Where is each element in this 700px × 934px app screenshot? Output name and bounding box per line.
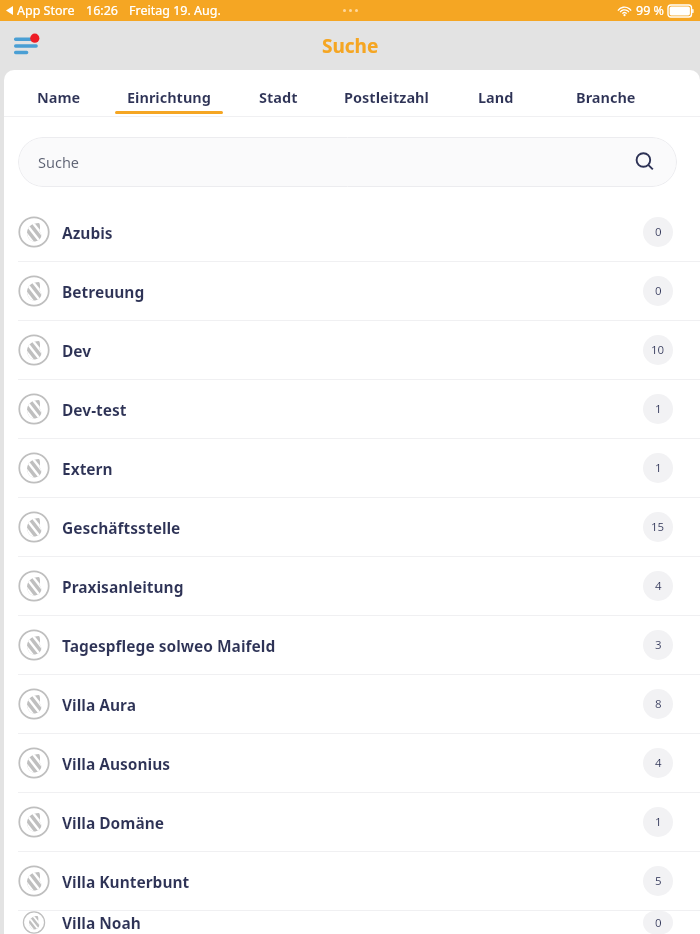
button[interactable]: Villa Aura	[4, 675, 700, 733]
staticText: Suche	[38, 152, 80, 172]
button[interactable]: Azubis	[4, 203, 700, 261]
staticText: 0	[655, 283, 662, 299]
staticText: Dev-test	[62, 399, 643, 420]
staticText: 1	[655, 401, 662, 417]
staticText: Name	[37, 87, 81, 107]
button[interactable]: Villa Kunterbunt	[4, 852, 700, 910]
staticText: Suche	[322, 33, 379, 59]
staticText: Villa Noah	[62, 912, 643, 933]
button[interactable]: Geschäftsstelle	[4, 498, 700, 556]
staticText: 4	[655, 578, 662, 594]
staticText: Land	[478, 87, 514, 107]
button[interactable]: Stadt	[244, 70, 313, 116]
button[interactable]: Villa Domäne	[4, 793, 700, 851]
staticText: Tagespflege solweo Maifeld	[62, 635, 643, 656]
button[interactable]: Name	[29, 70, 89, 116]
staticText: 4	[655, 755, 662, 771]
staticText: Postleitzahl	[344, 87, 429, 107]
button[interactable]: Branche	[563, 70, 649, 116]
button[interactable]: Tagespflege solweo Maifeld	[4, 616, 700, 674]
button[interactable]: Einrichtung	[108, 70, 229, 116]
button[interactable]: Suche	[18, 137, 677, 187]
staticText: Villa Kunterbunt	[62, 871, 643, 892]
staticText: 0	[655, 224, 662, 240]
staticText: App Store	[17, 2, 75, 19]
staticText: 3	[655, 637, 662, 653]
button[interactable]: Postleitzahl	[322, 70, 451, 116]
staticText: Villa Aura	[62, 694, 643, 715]
staticText: 1	[655, 814, 662, 830]
staticText: 99 %	[636, 2, 664, 19]
button[interactable]: Betreuung	[4, 262, 700, 320]
staticText: Villa Domäne	[62, 812, 643, 833]
staticText: 10	[651, 342, 665, 358]
staticText: Einrichtung	[127, 87, 211, 107]
staticText: Stadt	[259, 87, 298, 107]
staticText: Betreuung	[62, 281, 643, 302]
staticText: Azubis	[62, 222, 643, 243]
staticText: Freitag 19. Aug.	[129, 2, 221, 19]
staticText: Branche	[576, 87, 636, 107]
staticText: Geschäftsstelle	[62, 517, 643, 538]
button[interactable]: Dev	[4, 321, 700, 379]
staticText: 15	[651, 519, 665, 535]
button[interactable]: Extern	[4, 439, 700, 497]
staticText: Villa Ausonius	[62, 753, 643, 774]
staticText: 5	[655, 873, 662, 889]
button[interactable]: Menü	[11, 29, 45, 63]
button[interactable]: Praxisanleitung	[4, 557, 700, 615]
staticText: 0	[655, 915, 662, 931]
button[interactable]: Dev-test	[4, 380, 700, 438]
button[interactable]: Villa Ausonius	[4, 734, 700, 792]
staticText: 16:26	[86, 2, 118, 19]
staticText: Extern	[62, 458, 643, 479]
staticText: 1	[655, 460, 662, 476]
button[interactable]: Land	[466, 70, 526, 116]
button[interactable]: Villa Noah	[4, 911, 700, 934]
staticText: Praxisanleitung	[62, 576, 643, 597]
staticText: 8	[655, 696, 662, 712]
staticText: Dev	[62, 340, 643, 361]
